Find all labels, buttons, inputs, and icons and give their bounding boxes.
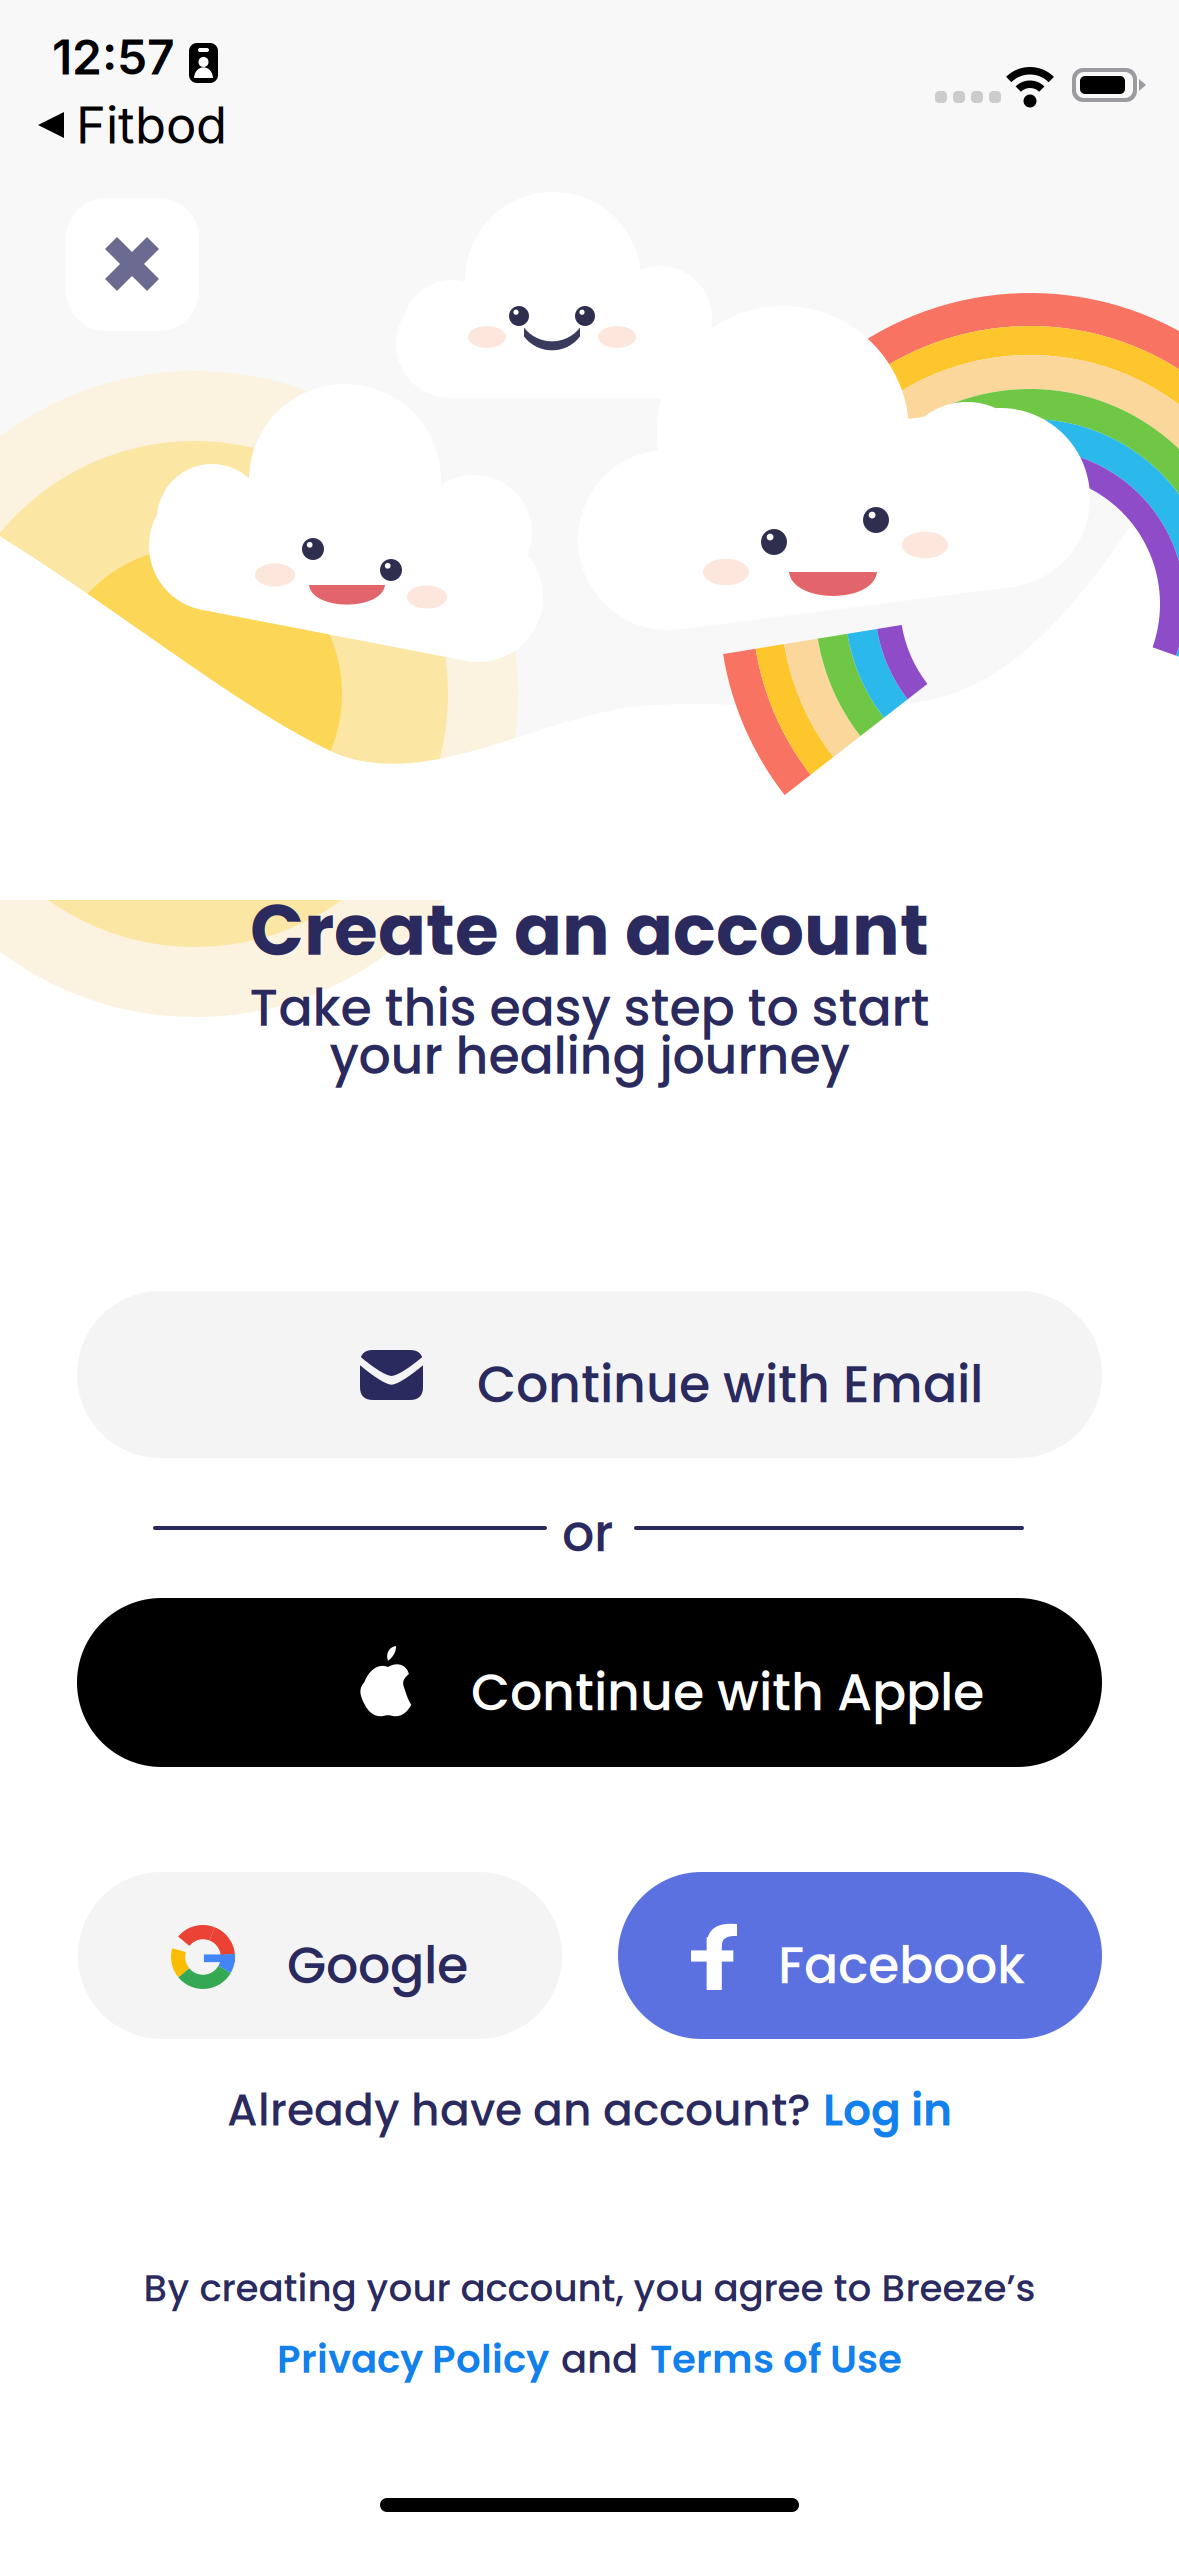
staticText: Continue with Apple: [471, 1657, 984, 1728]
staticText: Take this easy step to start: [249, 972, 929, 1043]
staticText: Terms of Use: [650, 2332, 902, 2386]
button[interactable]: Terms of Use: [650, 2332, 902, 2386]
staticText: or: [562, 1498, 613, 1569]
staticText: Continue with Email: [477, 1349, 983, 1420]
staticText: Privacy Policy: [277, 2332, 549, 2386]
staticText: Google: [287, 1930, 468, 2001]
staticText: Log in: [823, 2079, 952, 2141]
staticText: Create an account: [250, 880, 929, 979]
button[interactable]: Close: [0, 0, 1179, 2556]
button[interactable]: Facebook: [618, 1872, 1102, 2039]
staticText: your healing journey: [329, 1020, 849, 1091]
button[interactable]: Already have an account?: [0, 2080, 1179, 2140]
button[interactable]: Continue with Email: [77, 1291, 1102, 1458]
staticText: Facebook: [778, 1930, 1025, 2001]
staticText: By creating your account, you agree to B…: [143, 2262, 1035, 2314]
staticText: Already have an account?: [227, 2079, 811, 2141]
staticText: Fitbod: [76, 94, 227, 156]
button[interactable]: Privacy Policy: [277, 2332, 549, 2386]
button[interactable]: Continue with Apple: [77, 1598, 1102, 1767]
staticText: and: [561, 2332, 638, 2386]
staticText: 12:57: [52, 28, 175, 86]
button[interactable]: Google: [78, 1872, 562, 2039]
